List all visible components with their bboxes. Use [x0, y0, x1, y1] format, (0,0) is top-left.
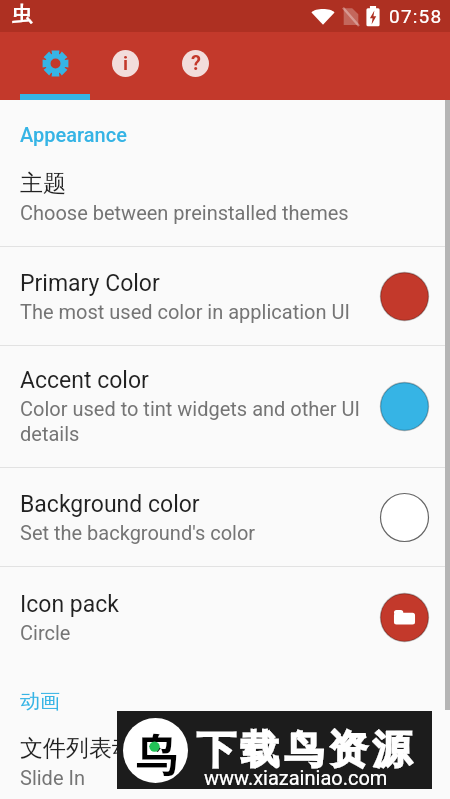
staticText: 下载鸟资源 [194, 725, 414, 774]
staticText: Background color [20, 491, 200, 518]
staticText: Appearance [20, 123, 127, 146]
button[interactable]: 主题 [0, 146, 450, 246]
staticText: Accent color [20, 367, 149, 394]
staticText: 主题 [20, 169, 66, 198]
staticText: i [123, 52, 129, 74]
staticText: Set the background's color [20, 521, 256, 544]
button[interactable]: Icon pack [0, 567, 450, 667]
staticText: The most used color in application UI [20, 300, 350, 323]
staticText: 文件列表动画 [20, 734, 158, 763]
staticText: www.xiazainiao.com [204, 766, 388, 789]
staticText: Icon pack [20, 591, 119, 618]
staticText: 07:58 [389, 5, 443, 27]
button[interactable]: 文件列表动画 [0, 723, 450, 799]
button[interactable]: Accent color [0, 346, 450, 467]
button[interactable]: Background color [0, 468, 450, 566]
staticText: 虫 [12, 2, 32, 27]
staticText: 鸟 [135, 721, 179, 785]
button[interactable]: Info [90, 32, 160, 100]
staticText: Choose between preinstalled themes [20, 201, 349, 224]
staticText: Color used to tint widgets and other UI … [20, 397, 362, 446]
button[interactable]: Help [160, 32, 230, 100]
staticText: ? [191, 51, 201, 74]
staticText: 动画 [20, 689, 60, 714]
button[interactable]: Primary Color [0, 247, 450, 345]
staticText: Circle [20, 621, 71, 644]
staticText: Primary Color [20, 270, 160, 297]
staticText: Slide In [20, 766, 85, 789]
button[interactable]: Settings [20, 32, 90, 100]
